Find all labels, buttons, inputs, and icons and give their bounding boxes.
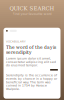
staticText: Serendipity is the occurrence of events … bbox=[6, 74, 57, 91]
staticText: QUICK SEARCH bbox=[9, 5, 54, 11]
staticText: The word of the day is serendipity bbox=[6, 44, 56, 55]
staticText: Lorem ipsum dolor sit amet, consectetur … bbox=[6, 57, 56, 67]
staticText: VOCABULARY bbox=[6, 40, 26, 43]
staticText: Find your favourite word bbox=[12, 12, 51, 16]
